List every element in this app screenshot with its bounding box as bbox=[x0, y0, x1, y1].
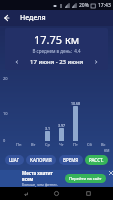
staticText: 20% bbox=[79, 2, 89, 9]
button[interactable]: РАССТ. bbox=[85, 155, 108, 165]
button[interactable]: Next week bbox=[92, 58, 100, 66]
staticText: Вт bbox=[31, 142, 36, 147]
staticText: 3.1 bbox=[45, 126, 50, 131]
staticText: РАССТ. bbox=[89, 157, 104, 163]
staticText: 10 bbox=[3, 111, 8, 116]
staticText: Сб bbox=[87, 142, 92, 147]
staticText: 17:43 bbox=[98, 2, 111, 9]
staticText: Пт bbox=[73, 142, 78, 147]
staticText: Чт bbox=[59, 142, 64, 147]
button[interactable]: 17.75 км bbox=[5, 28, 108, 70]
button[interactable]: Back bbox=[19, 187, 32, 200]
staticText: ШАГ bbox=[9, 157, 20, 163]
button[interactable]: ШАГ bbox=[5, 155, 24, 165]
staticText: Больше, чем фитнес. bbox=[22, 182, 58, 187]
staticText: 10.68 bbox=[71, 101, 80, 106]
button[interactable]: Перейти на сайт bbox=[65, 174, 106, 183]
staticText: ВРЕМЯ bbox=[63, 157, 79, 163]
staticText: Вс bbox=[101, 142, 106, 147]
staticText: 0 bbox=[3, 138, 6, 143]
button[interactable]: Back bbox=[0, 10, 16, 26]
staticText: Неделя bbox=[20, 13, 46, 23]
staticText: 3.97 bbox=[58, 123, 65, 128]
button[interactable]: КАЛОРИЯ bbox=[26, 155, 56, 165]
staticText: КМ bbox=[104, 148, 110, 153]
staticText: 17.75 км bbox=[34, 32, 80, 47]
staticText: КАЛОРИЯ bbox=[30, 157, 52, 163]
staticText: Места хватит всем bbox=[22, 170, 65, 182]
button[interactable]: ВРЕМЯ bbox=[59, 155, 83, 165]
button[interactable]: Previous week bbox=[13, 58, 21, 66]
staticText: В среднем в день: 4.4 bbox=[32, 48, 81, 54]
button[interactable]: Recent apps bbox=[82, 187, 95, 200]
button[interactable]: Home bbox=[50, 187, 63, 200]
staticText: Ср bbox=[45, 142, 50, 147]
staticText: Перейти на сайт bbox=[69, 176, 102, 181]
staticText: Пн bbox=[16, 142, 22, 147]
button[interactable]: Close ad bbox=[108, 170, 113, 175]
staticText: 20 bbox=[3, 76, 8, 81]
staticText: 17 июня - 23 июня bbox=[30, 58, 84, 66]
